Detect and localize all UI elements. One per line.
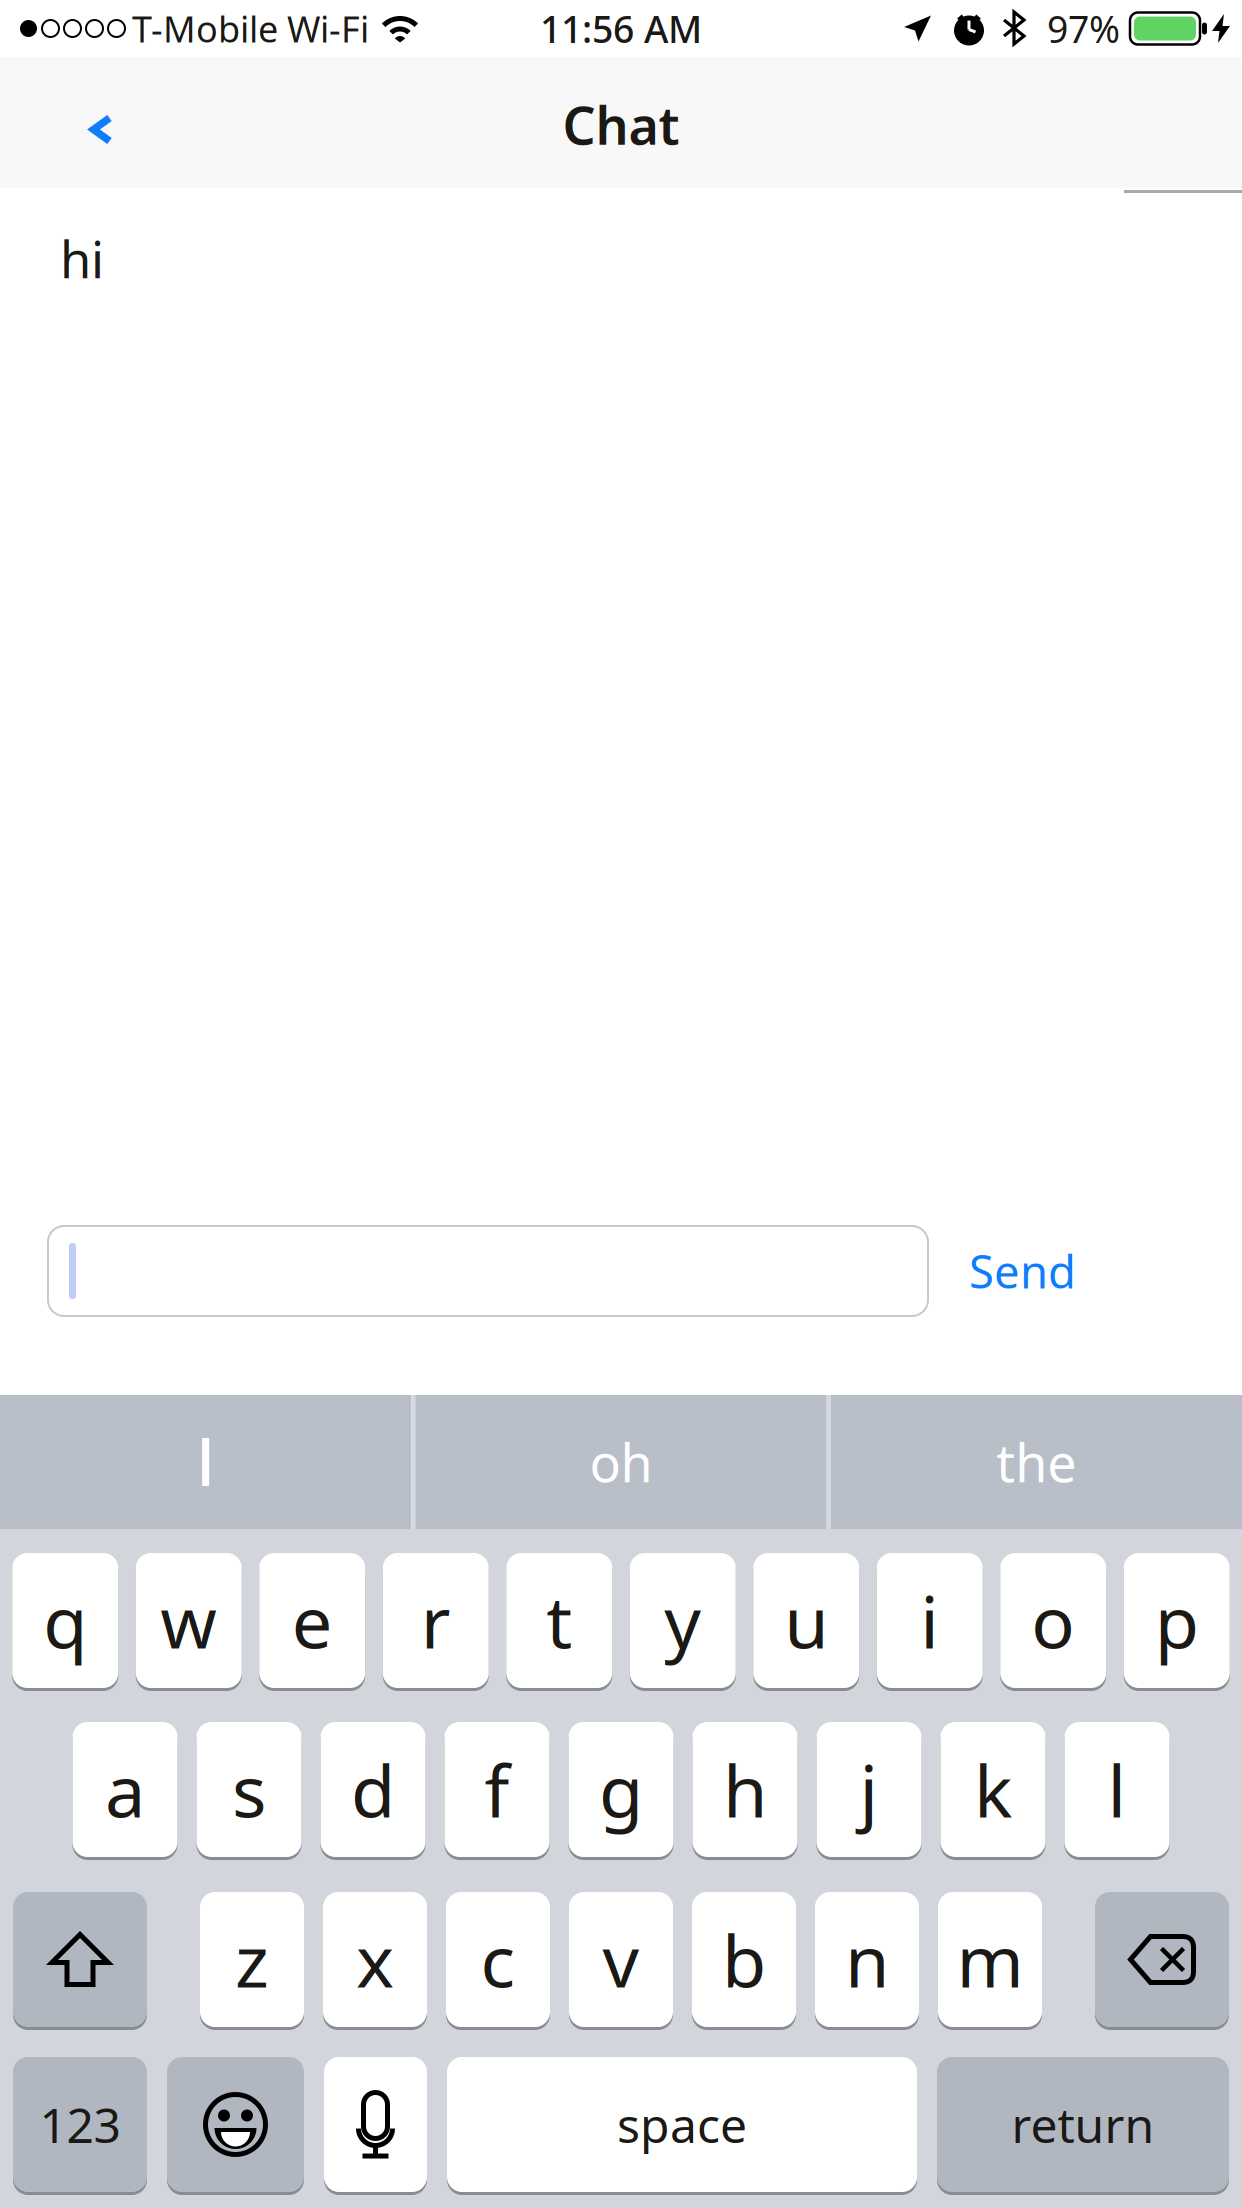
staticText: u [784, 1573, 828, 1668]
staticText: x [356, 1912, 394, 2007]
staticText: the [996, 1427, 1076, 1497]
staticText: 97% [1047, 4, 1120, 53]
staticText: oh [589, 1427, 652, 1497]
staticText: l [1107, 1742, 1126, 1837]
staticText: s [232, 1742, 266, 1837]
staticText: i [920, 1573, 939, 1668]
staticText: Send [969, 1241, 1076, 1301]
staticText: w [160, 1573, 217, 1668]
staticText: n [845, 1912, 889, 2007]
staticText: c [480, 1912, 515, 2007]
staticText: return [1011, 2093, 1154, 2156]
staticText: e [292, 1573, 333, 1668]
staticText: h [723, 1742, 767, 1837]
staticText: b [722, 1912, 766, 2007]
staticText: hi [60, 225, 104, 292]
staticText: T-Mobile Wi-Fi [132, 5, 369, 52]
staticText: t [546, 1573, 572, 1668]
staticText: a [105, 1742, 145, 1837]
staticText: g [599, 1742, 643, 1837]
staticText: o [1031, 1573, 1075, 1668]
staticText: q [43, 1573, 87, 1668]
staticText: y [664, 1573, 701, 1668]
staticText: 11:56 AM [540, 4, 702, 53]
staticText: j [859, 1742, 878, 1837]
staticText: k [974, 1742, 1012, 1837]
staticText: f [484, 1742, 509, 1837]
staticText: space [617, 2093, 747, 2156]
staticText: r [421, 1573, 451, 1668]
staticText: v [602, 1912, 639, 2007]
staticText: m [956, 1912, 1023, 2007]
staticText: 123 [39, 2093, 120, 2156]
staticText: Chat [562, 90, 679, 159]
staticText: z [235, 1912, 269, 2007]
staticText: p [1155, 1573, 1199, 1668]
staticText: d [351, 1742, 395, 1837]
